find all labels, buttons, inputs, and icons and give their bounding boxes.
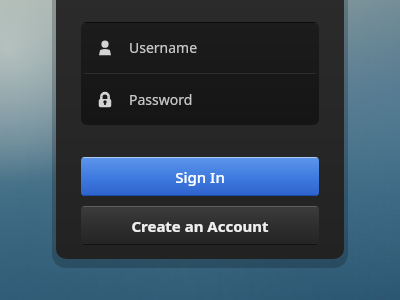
button[interactable]: Password bbox=[81, 74, 319, 125]
staticText: Username bbox=[129, 38, 198, 57]
button[interactable]: Create an Account bbox=[81, 206, 319, 245]
button[interactable]: Username bbox=[81, 22, 319, 73]
staticText: Password bbox=[129, 90, 193, 109]
staticText: Sign In bbox=[175, 167, 225, 187]
button[interactable]: Sign In bbox=[81, 157, 319, 196]
staticText: Create an Account bbox=[131, 216, 269, 236]
other: Password bbox=[97, 92, 113, 108]
other: Username bbox=[97, 40, 113, 56]
